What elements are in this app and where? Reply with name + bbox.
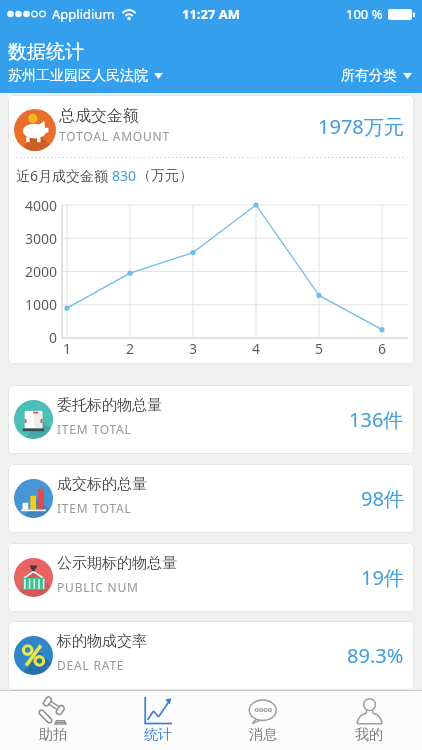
button[interactable]: 消息 xyxy=(210,691,316,750)
staticText: 1000 xyxy=(25,295,58,313)
staticText: PUBLIC NUM xyxy=(57,579,139,595)
staticText: 6 xyxy=(378,339,387,357)
staticText: 136件 xyxy=(349,406,404,433)
staticText: 100 % xyxy=(346,5,383,23)
staticText: 4 xyxy=(252,339,261,357)
staticText: 近6月成交金额 xyxy=(16,166,112,185)
staticText: 公示期标的物总量 xyxy=(57,554,177,573)
staticText: 总成交金额 xyxy=(59,106,139,126)
button[interactable]: 委托标的物总量 xyxy=(8,385,414,454)
staticText: 0 xyxy=(49,328,58,346)
staticText: ITEM TOTAL xyxy=(57,500,132,516)
staticText: 消息 xyxy=(249,726,277,744)
staticText: 4000 xyxy=(25,196,58,214)
button[interactable]: 助拍 xyxy=(0,691,105,750)
button[interactable]: 成交标的总量 xyxy=(8,464,414,533)
button[interactable]: 公示期标的物总量 xyxy=(8,543,414,612)
staticText: 19件 xyxy=(361,564,404,591)
button[interactable]: 统计 xyxy=(105,691,210,750)
staticText: 成交标的总量 xyxy=(57,475,147,494)
button[interactable]: 总成交金额 xyxy=(8,95,414,364)
staticText: 1978万元 xyxy=(318,113,404,140)
staticText: 11:27 AM xyxy=(182,5,241,23)
staticText: 5 xyxy=(315,339,324,357)
button[interactable]: 我的 xyxy=(316,691,422,750)
staticText: 助拍 xyxy=(39,726,67,744)
staticText: TOTOAL AMOUNT xyxy=(59,128,170,144)
staticText: DEAL RATE xyxy=(57,657,125,673)
staticText: 98件 xyxy=(361,485,404,512)
staticText: （万元） xyxy=(137,167,193,185)
staticText: 我的 xyxy=(355,726,383,744)
staticText: 苏州工业园区人民法院 xyxy=(8,67,148,85)
staticText: 委托标的物总量 xyxy=(57,396,162,415)
button[interactable]: 标的物成交率 xyxy=(8,621,414,690)
staticText: 数据统计 xyxy=(8,40,84,64)
button[interactable]: 所有分类 xyxy=(341,67,412,85)
staticText: 89.3% xyxy=(347,642,404,669)
staticText: 2 xyxy=(126,339,135,357)
staticText: 3 xyxy=(189,339,198,357)
staticText: 830 xyxy=(112,166,137,185)
staticText: 所有分类 xyxy=(341,67,397,85)
staticText: 标的物成交率 xyxy=(57,632,147,651)
staticText: Applidium xyxy=(52,5,115,23)
staticText: 2000 xyxy=(25,262,58,280)
staticText: ITEM TOTAL xyxy=(57,421,132,437)
staticText: 3000 xyxy=(25,229,58,247)
staticText: 1 xyxy=(63,339,72,357)
button[interactable]: 苏州工业园区人民法院 xyxy=(8,67,163,85)
staticText: 统计 xyxy=(144,726,172,744)
